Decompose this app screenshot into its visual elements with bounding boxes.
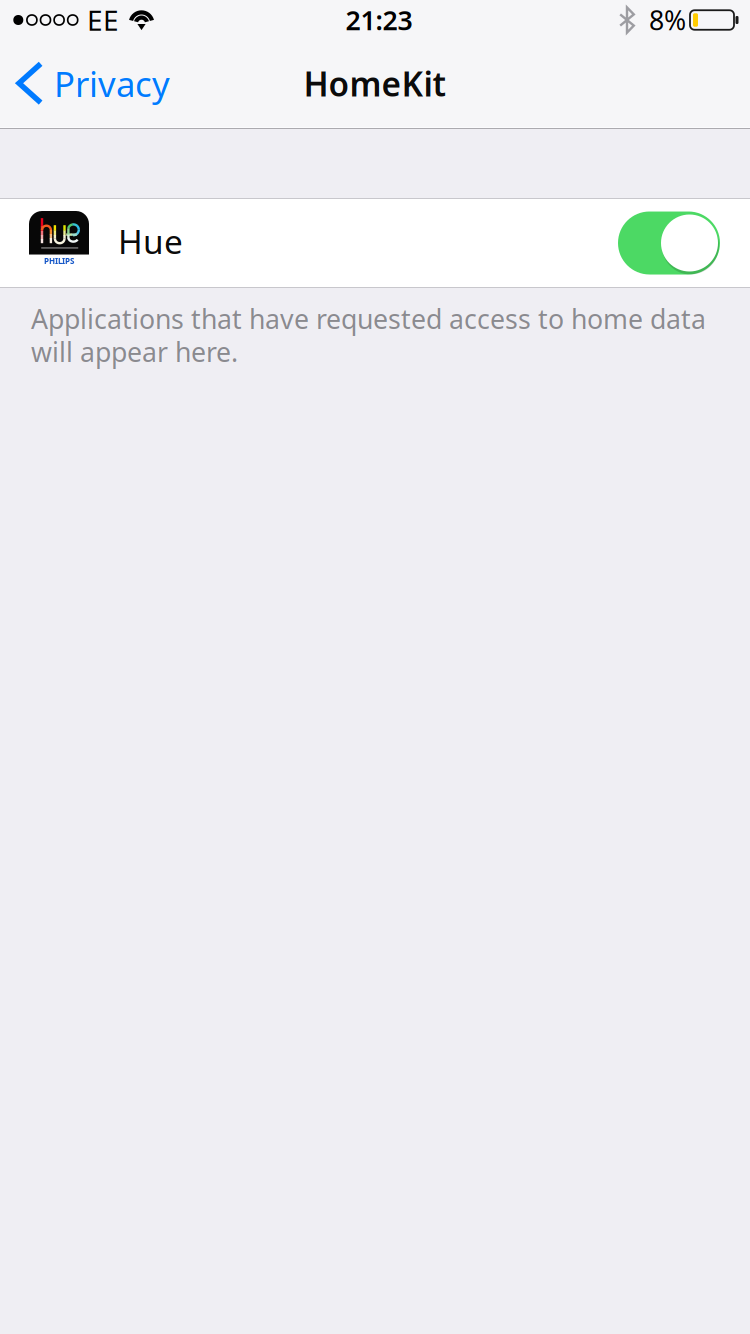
staticText: will appear here. xyxy=(31,334,238,369)
staticText: HomeKit xyxy=(303,61,446,106)
staticText: 8% xyxy=(649,2,686,38)
staticText: PHILIPS xyxy=(44,256,74,266)
staticText: Privacy xyxy=(54,60,170,106)
button[interactable]: Privacy xyxy=(0,39,184,127)
staticText: Applications that have requested access … xyxy=(31,301,706,336)
button[interactable]: PHILIPS xyxy=(0,199,750,287)
staticText: 21:23 xyxy=(345,2,412,38)
staticText: Hue xyxy=(118,219,183,263)
staticText: EE xyxy=(87,1,119,39)
